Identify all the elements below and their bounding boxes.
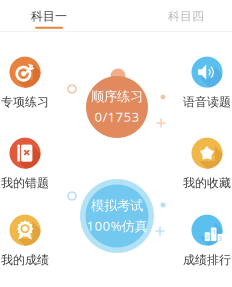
staticText: 我的成绩 bbox=[1, 253, 49, 267]
staticText: 科目一 bbox=[31, 9, 67, 24]
button[interactable]: 模拟考试 bbox=[85, 184, 148, 247]
staticText: 2 bbox=[206, 233, 209, 240]
button[interactable]: 2 bbox=[183, 215, 231, 267]
staticText: 3 bbox=[219, 235, 222, 242]
button[interactable]: 顺序练习 bbox=[86, 76, 148, 138]
staticText: 语音读题 bbox=[183, 95, 231, 109]
staticText: 成绩排行 bbox=[183, 253, 231, 267]
staticText: 0/1753 bbox=[94, 108, 139, 125]
button[interactable]: 科目四 bbox=[128, 0, 232, 31]
staticText: 我的错题 bbox=[1, 176, 49, 190]
button[interactable]: 我的错题 bbox=[1, 138, 49, 190]
button[interactable]: 语音读题 bbox=[183, 57, 231, 109]
staticText: 100%仿真 bbox=[86, 217, 147, 234]
staticText: 科目四 bbox=[168, 9, 204, 24]
staticText: 1 bbox=[212, 228, 215, 235]
button[interactable]: 科目一 bbox=[0, 0, 107, 31]
staticText: 顺序练习 bbox=[91, 88, 143, 105]
button[interactable]: 我的成绩 bbox=[1, 215, 49, 267]
staticText: 专项练习 bbox=[1, 95, 49, 109]
button[interactable]: 专项练习 bbox=[1, 57, 49, 109]
staticText: 模拟考试 bbox=[91, 197, 143, 214]
staticText: 我的收藏 bbox=[183, 176, 231, 190]
button[interactable]: 我的收藏 bbox=[183, 138, 231, 190]
